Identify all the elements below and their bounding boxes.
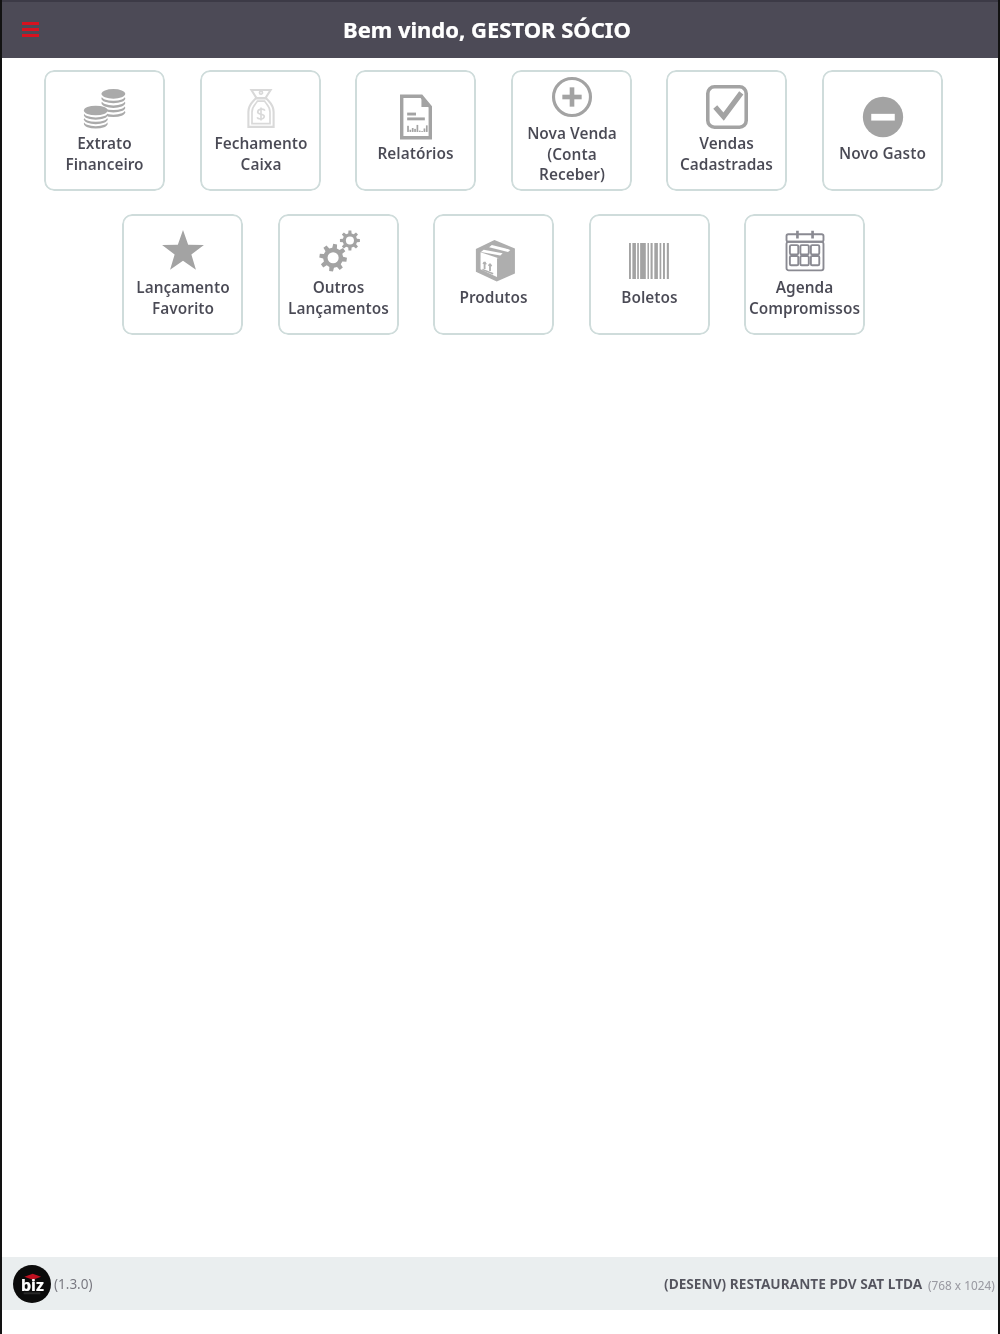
staticText: Lançamento Favorito xyxy=(136,277,230,318)
staticText: Extrato Financeiro xyxy=(65,133,144,174)
staticText: Fechamento Caixa xyxy=(214,133,308,174)
staticText: (DESENV) RESTAURANTE PDV SAT LTDA xyxy=(664,1274,923,1293)
button[interactable]: biz xyxy=(0,1265,93,1303)
staticText: Nova Venda (Conta Receber) xyxy=(527,123,617,184)
button[interactable]: Vendas Cadastradas xyxy=(666,70,787,191)
staticText: Novo Gasto xyxy=(839,143,926,164)
button[interactable]: Nova Venda (Conta Receber) xyxy=(511,70,632,191)
staticText: Produtos xyxy=(459,287,528,308)
button[interactable]: Lançamento Favorito xyxy=(122,214,243,335)
button[interactable]: Produtos xyxy=(433,214,554,335)
button[interactable]: Boletos xyxy=(589,214,710,335)
button[interactable]: Agenda Compromissos xyxy=(744,214,865,335)
staticText: (768 x 1024) xyxy=(928,1277,995,1293)
staticText: (1.3.0) xyxy=(54,1275,93,1293)
button[interactable]: Extrato Financeiro xyxy=(44,70,165,191)
button[interactable]: Outros Lançamentos xyxy=(278,214,399,335)
button[interactable]: Menu xyxy=(12,11,48,47)
staticText: biz xyxy=(21,1274,44,1296)
button[interactable]: Relatórios xyxy=(355,70,476,191)
staticText: Agenda Compromissos xyxy=(749,277,860,318)
button[interactable]: Novo Gasto xyxy=(822,70,943,191)
staticText: Outros Lançamentos xyxy=(288,277,389,318)
button[interactable]: Fechamento Caixa xyxy=(200,70,321,191)
staticText: Vendas Cadastradas xyxy=(680,133,773,174)
staticText: Relatórios xyxy=(377,143,454,164)
staticText: Boletos xyxy=(621,287,678,308)
staticText: Bem vindo, GESTOR SÓCIO xyxy=(343,14,631,44)
